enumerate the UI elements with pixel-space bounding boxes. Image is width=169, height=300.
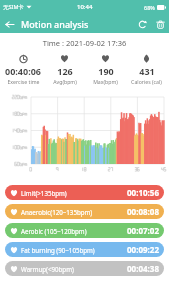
staticText: 00:08:08	[127, 206, 159, 217]
button[interactable]: Sync	[133, 15, 151, 33]
staticText: Exercise time	[7, 78, 40, 85]
staticText: Motion analysis	[21, 18, 89, 30]
staticText: Avg(bpm)	[53, 78, 77, 85]
staticText: 00:10:56	[127, 187, 159, 198]
staticText: Limit(>135bpm)	[21, 189, 127, 197]
staticText: Anaerobic(120~135bpm)	[21, 208, 127, 216]
button[interactable]: Limit(>135bpm)	[5, 185, 164, 200]
staticText: Fat burning (90~105bpm)	[21, 246, 127, 254]
button[interactable]: Aerobic (105~120bpm)	[5, 223, 164, 238]
staticText: 00:09:22	[127, 244, 159, 255]
staticText: 无SIM卡	[3, 3, 24, 11]
staticText: 126	[57, 65, 73, 77]
staticText: 00:04:38	[127, 263, 159, 274]
button[interactable]: Back	[0, 15, 18, 33]
staticText: Warmup(<90bpm)	[21, 265, 127, 273]
staticText: 00:40:06	[5, 65, 41, 77]
staticText: 10:44	[77, 3, 93, 11]
staticText: 190	[98, 65, 114, 77]
staticText: 68%	[144, 4, 155, 11]
staticText: Max(bpm)	[93, 78, 118, 85]
staticText: Calories (cal)	[131, 78, 162, 85]
button[interactable]: Anaerobic(120~135bpm)	[5, 204, 164, 219]
staticText: 00:07:02	[127, 225, 159, 236]
button[interactable]: Fat burning (90~105bpm)	[5, 242, 164, 257]
staticText: Time : 2021-09-02 17:36	[0, 38, 169, 48]
staticText: Aerobic (105~120bpm)	[21, 227, 127, 235]
staticText: 431	[139, 65, 155, 77]
button[interactable]: Delete	[151, 15, 169, 33]
button[interactable]: Warmup(<90bpm)	[5, 261, 164, 276]
